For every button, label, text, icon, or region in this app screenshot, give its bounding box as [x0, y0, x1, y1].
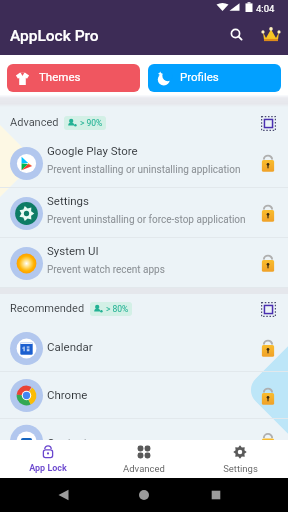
staticText: App Lock — [29, 463, 67, 474]
button[interactable]: Lock — [255, 250, 281, 276]
button[interactable]: Lock — [255, 150, 281, 176]
button[interactable]: Themes — [7, 64, 140, 92]
staticText: > 80% — [106, 304, 129, 314]
staticText: Recommended — [10, 302, 85, 315]
staticText: 4:04 — [256, 3, 275, 14]
button[interactable]: Chrome — [0, 372, 288, 419]
button[interactable]: Lock — [255, 383, 281, 409]
button[interactable]: Advanced — [96, 440, 192, 478]
button[interactable]: Profiles — [148, 64, 281, 92]
staticText: Prevent uninstalling or force-stop appli… — [47, 214, 246, 226]
staticText: Advanced — [123, 463, 165, 474]
staticText: Profiles — [180, 70, 219, 83]
button[interactable]: Settings — [192, 440, 288, 478]
staticText: Settings — [47, 194, 89, 207]
staticText: Prevent watch recent apps — [47, 264, 165, 276]
button[interactable]: Select all — [255, 296, 281, 322]
button[interactable]: System UI — [0, 238, 288, 288]
staticText: Chrome — [47, 388, 88, 401]
button[interactable]: App Lock — [0, 440, 96, 478]
button[interactable]: Navigation bar — [0, 478, 288, 512]
button[interactable]: Lock — [255, 335, 281, 361]
button[interactable]: Google Play Store — [0, 138, 288, 188]
button[interactable]: Lock — [255, 200, 281, 226]
staticText: Contacts — [47, 436, 94, 440]
staticText: Advanced — [10, 116, 59, 129]
staticText: > 90% — [80, 118, 103, 128]
button[interactable]: Calendar — [0, 324, 288, 372]
staticText: Google Play Store — [47, 144, 138, 157]
staticText: Calendar — [47, 340, 93, 353]
staticText: System UI — [47, 244, 99, 257]
button[interactable]: Search — [222, 22, 250, 50]
button[interactable]: Settings — [0, 188, 288, 238]
staticText: Themes — [39, 70, 81, 83]
staticText: AppLock Pro — [10, 27, 99, 45]
button[interactable]: Premium — [257, 22, 285, 50]
staticText: Settings — [223, 463, 258, 474]
button[interactable]: Select all — [255, 110, 281, 136]
staticText: Prevent installing or uninstalling appli… — [47, 164, 241, 176]
button[interactable]: Contacts — [0, 419, 288, 440]
